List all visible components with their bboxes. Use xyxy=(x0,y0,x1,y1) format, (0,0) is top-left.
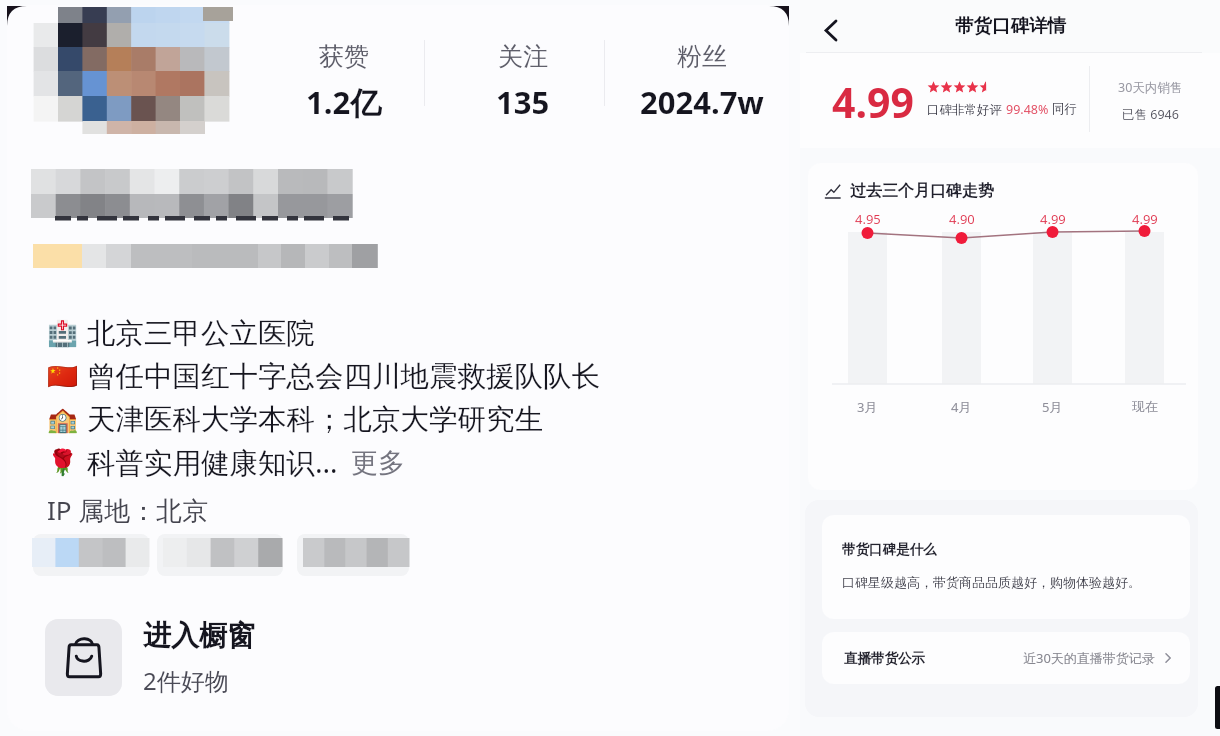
staticText: 4.99 xyxy=(832,74,914,130)
staticText: 2件好物 xyxy=(143,664,229,697)
staticText: 🏥 xyxy=(47,319,79,348)
staticText: 已售 6946 xyxy=(1122,106,1179,123)
staticText: 30天内销售 xyxy=(1118,79,1183,96)
staticText: 4.95 xyxy=(855,210,881,228)
staticText: 更多 xyxy=(351,446,405,480)
button[interactable]: 粉丝 xyxy=(622,41,782,123)
staticText: 🏫 xyxy=(47,405,79,434)
staticText: 科普实用健康知识… xyxy=(87,443,338,482)
staticText: 北京三甲公立医院 xyxy=(87,316,315,352)
staticText: 直播带货公示 xyxy=(844,650,925,667)
staticText: 🇨🇳 xyxy=(47,362,79,391)
staticText: 现在 xyxy=(1132,398,1158,414)
staticText: 2024.7w xyxy=(640,81,764,123)
staticText: 5月 xyxy=(1042,398,1063,416)
staticText: 口碑星级越高，带货商品品质越好，购物体验越好。 xyxy=(842,574,1141,590)
staticText: 4.90 xyxy=(949,210,975,228)
staticText: 曾任中国红十字总会四川地震救援队队长 xyxy=(87,359,600,395)
button[interactable]: Profile tag xyxy=(163,538,282,567)
staticText: 过去三个月口碑走势 xyxy=(850,181,994,201)
button[interactable]: 获赞 xyxy=(264,41,424,123)
staticText: 1.2亿 xyxy=(306,81,382,123)
button[interactable]: 进入橱窗 xyxy=(37,611,357,703)
staticText: 获赞 xyxy=(319,41,369,72)
staticText: 口碑非常好评 xyxy=(927,101,1006,118)
staticText: 135 xyxy=(496,81,550,123)
button[interactable]: Back xyxy=(812,11,850,49)
button[interactable]: 直播带货公示 xyxy=(822,632,1190,684)
staticText: 🌹 xyxy=(47,448,79,477)
staticText: 4月 xyxy=(951,398,972,416)
staticText: 4.99 xyxy=(1132,210,1158,228)
button[interactable]: Profile tag xyxy=(303,538,409,567)
staticText: IP 属地：北京 xyxy=(47,492,209,528)
staticText: 99.48% xyxy=(1006,101,1052,118)
staticText: 进入橱窗 xyxy=(143,618,255,653)
staticText: 粉丝 xyxy=(677,41,727,72)
staticText: 近30天的直播带货记录 xyxy=(1023,649,1155,667)
staticText: 同行 xyxy=(1052,101,1077,117)
staticText: 3月 xyxy=(857,398,878,416)
staticText: 带货口碑详情 xyxy=(955,14,1066,37)
button[interactable]: Profile tag xyxy=(32,538,149,567)
staticText: 4.99 xyxy=(1040,210,1066,228)
staticText: 带货口碑是什么 xyxy=(842,541,937,558)
button[interactable]: 关注 xyxy=(443,41,603,123)
staticText: 天津医科大学本科；北京大学研究生 xyxy=(87,402,543,438)
staticText: 关注 xyxy=(498,41,548,72)
